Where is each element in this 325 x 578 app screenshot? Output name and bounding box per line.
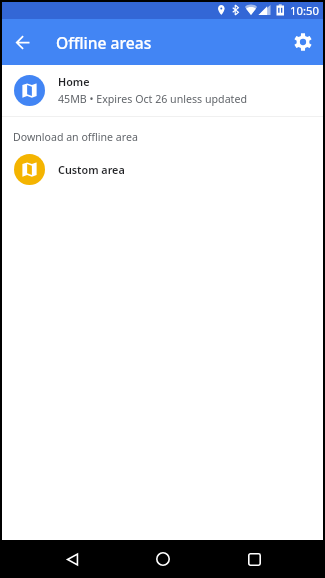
- staticText: 10:50: [290, 3, 319, 18]
- button[interactable]: Back: [2, 19, 43, 65]
- staticText: Custom area: [58, 162, 125, 177]
- button[interactable]: Home: [2, 65, 323, 116]
- staticText: Download an offline area: [13, 130, 138, 144]
- staticText: 45MB • Expires Oct 26 unless updated: [58, 92, 247, 107]
- staticText: Home: [58, 74, 90, 89]
- button[interactable]: Home: [140, 540, 185, 578]
- button[interactable]: Back: [50, 540, 94, 578]
- button[interactable]: Custom area: [2, 147, 323, 191]
- button[interactable]: Recents: [232, 540, 276, 578]
- button[interactable]: Settings: [283, 19, 323, 65]
- staticText: Offline areas: [56, 32, 152, 53]
